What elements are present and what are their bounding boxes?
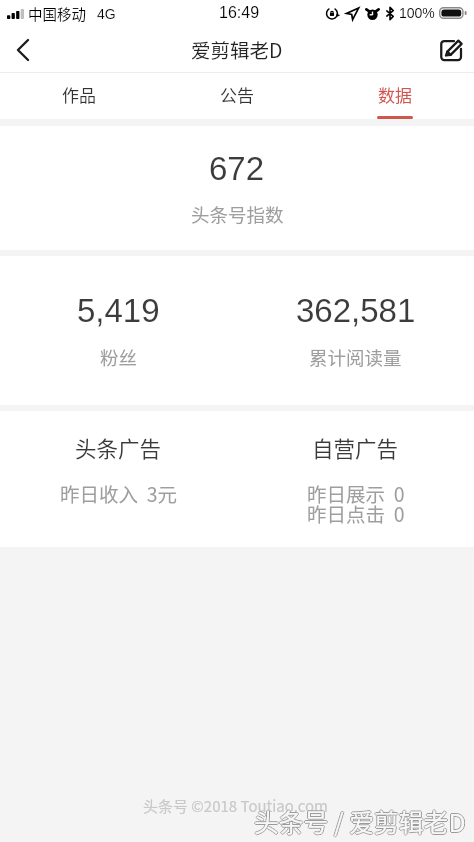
staticText: 数据: [378, 82, 412, 107]
staticText: 头条号 ©2018 Toutiao.com: [143, 795, 328, 817]
staticText: 爱剪辑老D: [191, 35, 283, 63]
staticText: 16:49: [219, 4, 260, 22]
staticText: 昨日展示 0 昨日点击 0: [307, 479, 405, 528]
staticText: 672: [209, 150, 265, 187]
staticText: 5,419: [77, 292, 160, 329]
staticText: 4G: [97, 6, 116, 22]
staticText: 头条号 / 爱剪辑老D: [254, 804, 466, 840]
staticText: 累计阅读量: [309, 344, 402, 371]
staticText: 头条号 / 爱剪辑老D: [255, 803, 467, 839]
staticText: 自营广告: [312, 432, 399, 463]
button[interactable]: 公告: [158, 73, 316, 119]
staticText: 头条号 / 爱剪辑老D: [254, 803, 466, 839]
staticText: 头条广告: [75, 432, 162, 463]
staticText: 公告: [220, 82, 254, 107]
staticText: 362,581: [296, 292, 416, 329]
staticText: 作品: [62, 82, 96, 107]
staticText: 昨日收入 3元: [60, 479, 178, 507]
staticText: 100%: [399, 5, 435, 21]
staticText: 粉丝: [100, 344, 138, 371]
button[interactable]: 作品: [0, 73, 158, 119]
button[interactable]: Edit: [428, 27, 474, 73]
button[interactable]: Back: [0, 27, 46, 73]
staticText: 中国移动: [28, 3, 86, 24]
staticText: 头条号 / 爱剪辑老D: [254, 802, 466, 838]
staticText: 头条号指数: [191, 201, 284, 228]
button[interactable]: 数据: [316, 73, 474, 119]
staticText: 头条号 / 爱剪辑老D: [253, 803, 465, 839]
